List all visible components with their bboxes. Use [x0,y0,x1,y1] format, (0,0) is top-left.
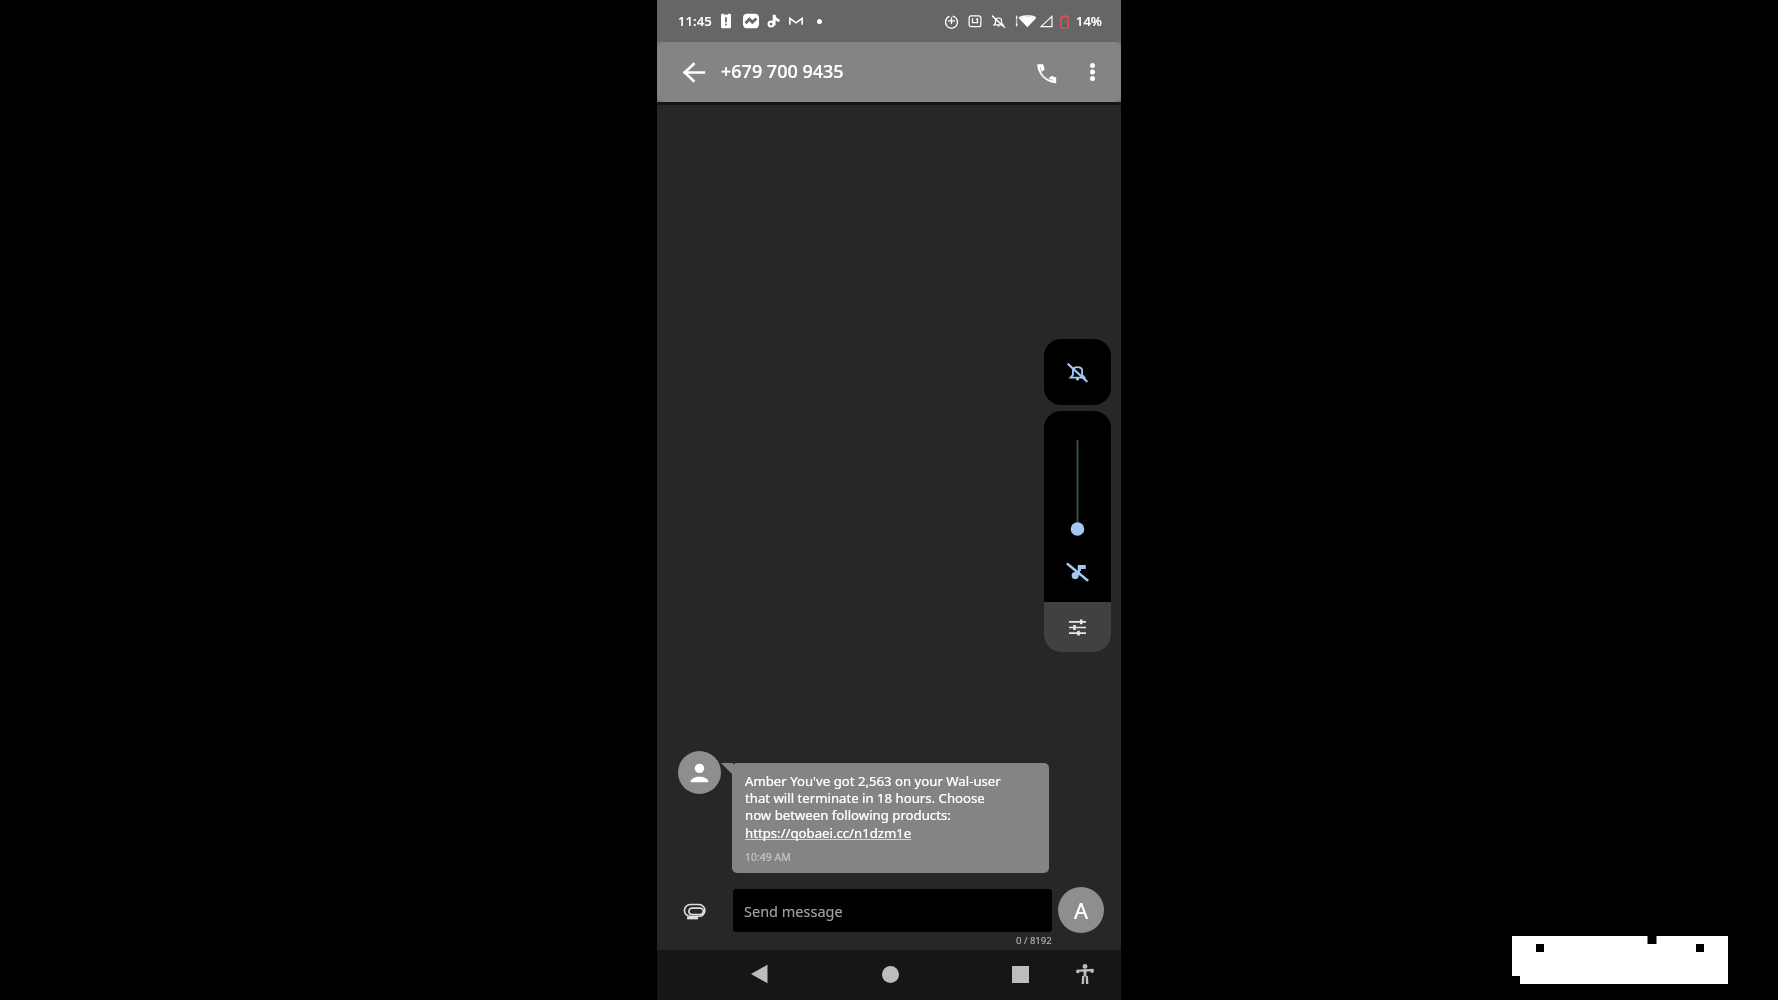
staticText: Send message [744,901,843,921]
button[interactable]: More options [1072,42,1112,102]
staticText: Amber You've got 2,563 on your Wal-user … [745,772,1001,824]
staticText: 0 / 8192 [1016,934,1052,947]
button[interactable]: Attach file [657,880,733,934]
button[interactable]: Accessibility [1061,950,1109,998]
button[interactable]: Recent apps [996,950,1044,998]
button[interactable]: Volume slider [1044,411,1111,602]
staticText: 10:49 AM [745,850,791,864]
staticText: 11:45 [678,12,712,30]
staticText: +679 700 9435 [721,59,844,84]
button[interactable]: Back [735,950,783,998]
button[interactable]: Call [1019,42,1067,102]
button[interactable]: Send message [733,889,1052,932]
button[interactable]: Contact avatar [678,751,721,794]
button[interactable]: Amber You've got 2,563 on your Wal-user … [732,763,1049,873]
button[interactable]: Volume settings [1044,602,1111,652]
button[interactable]: Home [866,950,914,998]
staticText: A [1074,895,1089,925]
button[interactable]: Send [1052,880,1121,942]
button[interactable]: Ringer mode [1044,339,1111,405]
button[interactable]: Back [657,42,713,102]
staticText: 14% [1076,12,1102,30]
staticText: https://qobaei.cc/n1dzm1e [745,824,912,842]
